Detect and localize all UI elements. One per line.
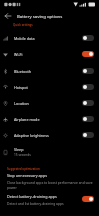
button[interactable]: Toggle off [82, 84, 94, 90]
button[interactable]: Toggle off [82, 35, 94, 41]
button[interactable]: Bluetooth [0, 63, 99, 79]
staticText: Hotspot [14, 85, 28, 90]
staticText: Stop unnecessary apps [7, 173, 47, 178]
staticText: Battery saving options [17, 13, 63, 19]
button[interactable]: Stop unnecessary apps [0, 172, 99, 190]
button[interactable]: Toggle off [82, 68, 94, 74]
staticText: Airplane mode [14, 117, 40, 122]
button[interactable]: Airplane mode [0, 111, 99, 127]
button[interactable]: Detect battery-draining apps [0, 190, 99, 208]
staticText: Close background apps to boost performan… [7, 180, 94, 190]
button[interactable]: Toggle off [82, 100, 94, 106]
button[interactable]: Adaptive brightness [0, 127, 99, 143]
button[interactable]: Toggle on [82, 51, 94, 57]
staticText: Location [14, 101, 29, 106]
staticText: Detect and list battery-draining apps [7, 201, 64, 205]
button[interactable]: Wi-Fi [0, 46, 99, 62]
button[interactable]: Sleep [0, 144, 99, 160]
staticText: Suggested optimization [7, 167, 40, 171]
button[interactable]: Hotspot [0, 79, 99, 95]
staticText: Sleep [14, 147, 24, 152]
staticText: 15 seconds [14, 153, 31, 157]
staticText: Quick settings [13, 23, 33, 27]
staticText: Bluetooth [14, 69, 32, 74]
button[interactable]: Toggle off [82, 116, 94, 122]
button[interactable]: Toggle off [82, 132, 94, 138]
staticText: Adaptive brightness [14, 133, 49, 138]
button[interactable]: Toggle on [82, 196, 94, 202]
staticText: Detect battery-draining apps [7, 194, 57, 199]
button[interactable]: Back [3, 11, 13, 21]
staticText: Mobile data [14, 36, 35, 41]
button[interactable]: Location [0, 95, 99, 111]
button[interactable]: Mobile data [0, 30, 99, 46]
staticText: Wi-Fi [14, 52, 23, 57]
